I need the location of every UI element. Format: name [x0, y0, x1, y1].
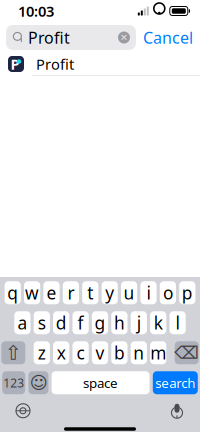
staticText: ⌫ [174, 343, 199, 363]
staticText: y [105, 281, 114, 304]
staticText: P [10, 54, 19, 74]
button[interactable]: o [160, 281, 176, 304]
button[interactable]: e [43, 281, 60, 304]
button[interactable]: space [52, 371, 150, 394]
button[interactable]: k [150, 311, 166, 334]
button[interactable]: P [0, 53, 200, 75]
staticText: ✕ [120, 32, 128, 43]
staticText: k [154, 311, 163, 334]
button[interactable]: u [121, 281, 137, 304]
staticText: g [94, 311, 105, 334]
button[interactable]: p [179, 281, 195, 304]
button[interactable]: search [153, 371, 198, 394]
button[interactable]: Cancel [136, 25, 197, 50]
staticText: d [56, 311, 67, 334]
button[interactable]: c [72, 341, 89, 364]
staticText: 10:03 [18, 1, 54, 21]
staticText: c [77, 341, 85, 364]
button[interactable]: z [34, 341, 50, 364]
staticText: m [150, 341, 166, 364]
button[interactable]: Delete [175, 341, 199, 364]
button[interactable]: f [72, 311, 89, 334]
staticText: n [133, 341, 144, 364]
button[interactable]: Shift [1, 341, 25, 364]
button[interactable]: y [102, 281, 118, 304]
button[interactable]: n [131, 341, 147, 364]
button[interactable]: i [140, 281, 157, 304]
button[interactable]: t [82, 281, 98, 304]
staticText: z [38, 341, 46, 364]
button[interactable]: Profit [6, 25, 136, 50]
button[interactable]: l [169, 311, 186, 334]
button[interactable]: 123 [2, 371, 25, 394]
staticText: space [83, 374, 118, 392]
staticText: i [146, 281, 150, 304]
staticText: Cancel [143, 27, 193, 48]
staticText: ⇧ [5, 341, 22, 364]
staticText: b [114, 341, 125, 364]
staticText: l [176, 311, 180, 334]
staticText: t [87, 281, 93, 304]
button[interactable]: s [34, 311, 50, 334]
staticText: f [78, 311, 84, 334]
button[interactable]: x [53, 341, 69, 364]
button[interactable]: Next keyboard [15, 403, 31, 419]
staticText: w [25, 281, 39, 304]
staticText: x [57, 341, 66, 364]
staticText: o [163, 281, 173, 304]
staticText: ☺ [29, 373, 47, 393]
button[interactable]: g [92, 311, 108, 334]
button[interactable]: j [131, 311, 147, 334]
staticText: h [114, 311, 125, 334]
staticText: r [67, 281, 74, 304]
button[interactable]: a [14, 311, 30, 334]
staticText: p [182, 281, 193, 304]
staticText: s [38, 311, 46, 334]
button[interactable]: r [63, 281, 79, 304]
button[interactable]: w [24, 281, 40, 304]
staticText: search [155, 374, 195, 392]
staticText: a [17, 311, 27, 334]
button[interactable]: v [92, 341, 108, 364]
button[interactable]: Emoji [28, 371, 48, 394]
staticText: v [95, 341, 104, 364]
button[interactable]: b [111, 341, 127, 364]
staticText: Profit [28, 27, 70, 48]
button[interactable]: m [150, 341, 166, 364]
button[interactable]: q [5, 281, 21, 304]
button[interactable]: d [53, 311, 69, 334]
staticText: q [7, 281, 18, 304]
staticText: Profit [36, 54, 74, 74]
staticText: u [124, 281, 135, 304]
button[interactable]: Dictate [169, 402, 185, 419]
staticText: e [46, 281, 56, 304]
staticText: 123 [3, 375, 24, 391]
button[interactable]: h [111, 311, 127, 334]
staticText: j [137, 311, 141, 334]
